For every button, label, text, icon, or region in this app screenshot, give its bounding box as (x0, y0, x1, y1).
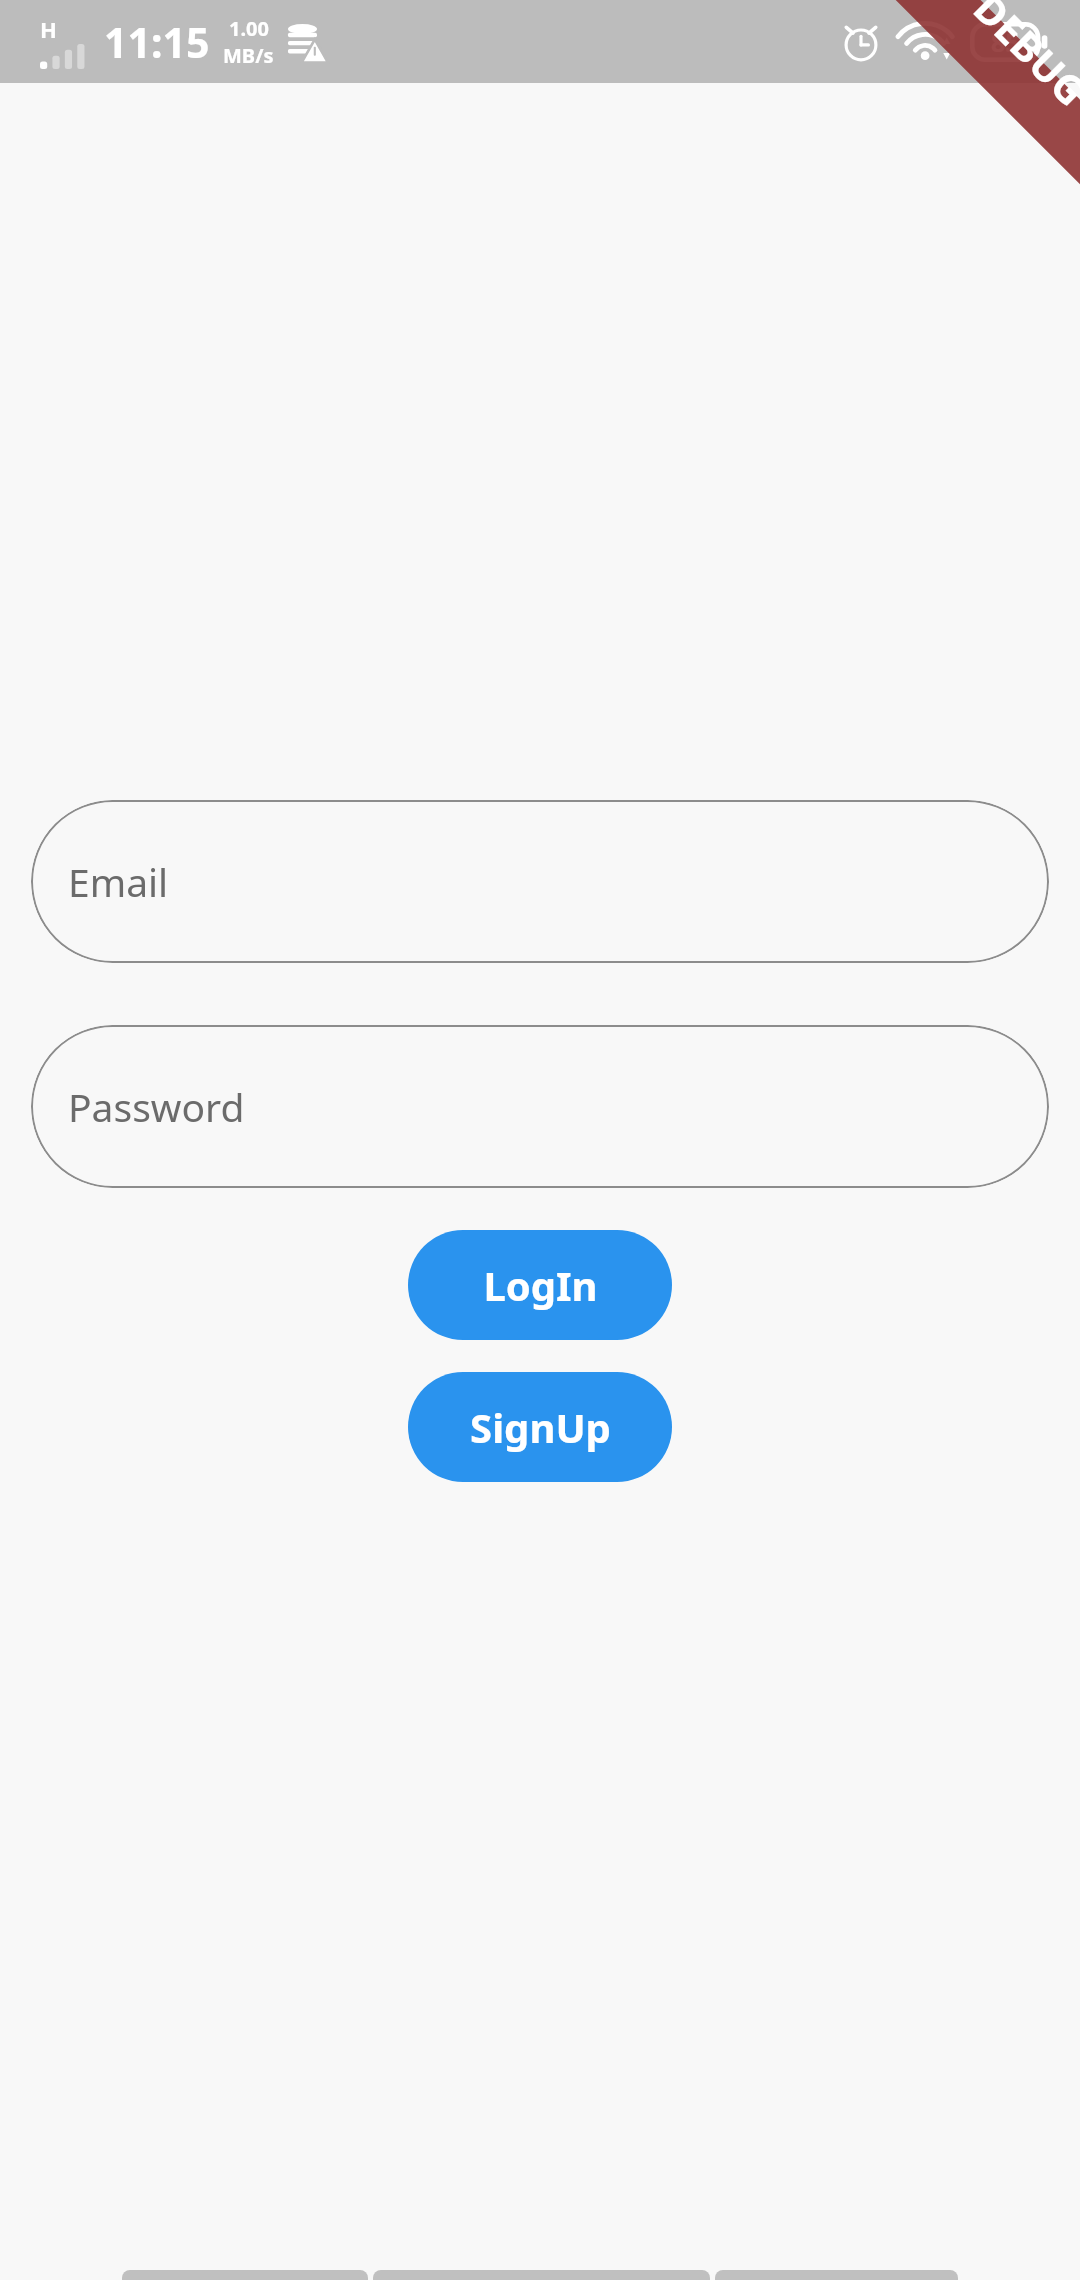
button[interactable]: Email (31, 800, 1049, 963)
other: Alarm (840, 21, 882, 63)
staticText: H (40, 14, 57, 44)
staticText: Password (68, 1080, 245, 1133)
staticText: DEBUG (963, 0, 1080, 117)
button[interactable]: LogIn (408, 1230, 672, 1340)
other: Wi-Fi (904, 23, 952, 61)
staticText: MB/s (223, 42, 274, 69)
staticText: LogIn (483, 1258, 598, 1312)
staticText: 1.00 (229, 15, 269, 42)
staticText: Email (68, 855, 169, 908)
staticText: SignUp (470, 1400, 611, 1454)
staticText: 11:15 (104, 14, 210, 70)
other: Battery 85 percent (970, 22, 1050, 62)
button[interactable]: SignUp (408, 1372, 672, 1482)
button[interactable]: Password (31, 1025, 1049, 1188)
staticText: 85 (991, 25, 1020, 59)
